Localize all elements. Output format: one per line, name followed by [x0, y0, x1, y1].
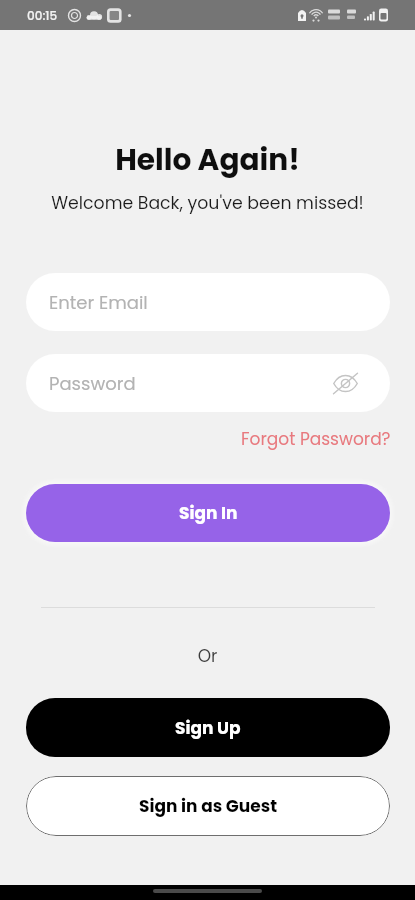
button[interactable]: Sign Up	[26, 698, 390, 757]
staticText: Password	[49, 371, 136, 396]
button[interactable]: Sign in as Guest	[26, 776, 390, 836]
staticText: Welcome Back, you've been missed!	[0, 191, 415, 215]
staticText: 00:15	[27, 7, 58, 24]
staticText: Or	[0, 644, 415, 668]
button[interactable]: Forgot Password?	[241, 427, 391, 451]
button[interactable]: Password	[26, 354, 390, 412]
staticText: Forgot Password?	[241, 427, 391, 451]
staticText: Sign Up	[175, 716, 241, 740]
staticText: Enter Email	[49, 290, 148, 315]
button[interactable]: Show password	[330, 368, 360, 398]
button[interactable]: Sign In	[26, 484, 390, 542]
staticText: Sign In	[179, 501, 238, 525]
button[interactable]: Enter Email	[26, 273, 390, 331]
staticText: Sign in as Guest	[139, 794, 278, 818]
staticText: Hello Again!	[0, 139, 415, 180]
